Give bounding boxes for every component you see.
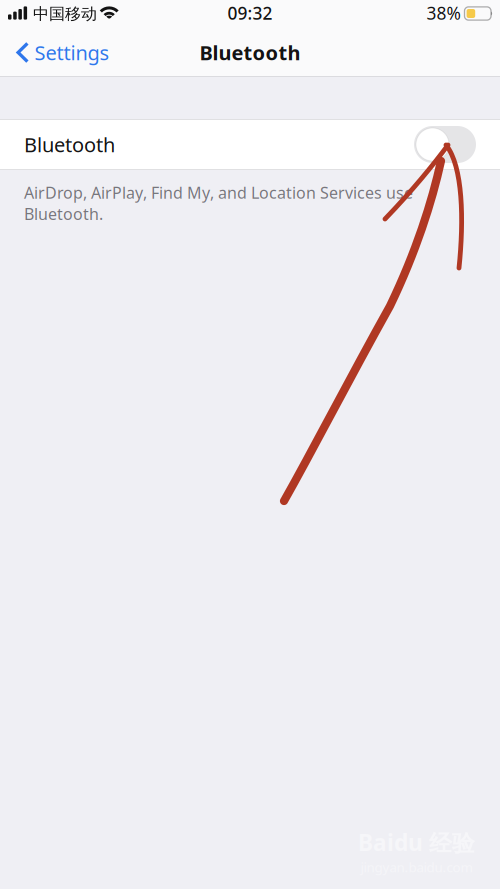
staticText: Bluetooth bbox=[24, 131, 115, 158]
staticText: 中国移动 bbox=[33, 4, 97, 24]
button[interactable]: Settings bbox=[0, 28, 121, 77]
staticText: 38% bbox=[426, 1, 460, 24]
button[interactable]: Bluetooth bbox=[0, 119, 500, 170]
staticText: 09:32 bbox=[227, 1, 272, 24]
staticText: Settings bbox=[34, 39, 109, 66]
staticText: AirDrop, AirPlay, Find My, and Location … bbox=[24, 182, 413, 224]
button[interactable]: Bluetooth, off bbox=[414, 126, 476, 163]
staticText: Bluetooth bbox=[199, 39, 300, 66]
